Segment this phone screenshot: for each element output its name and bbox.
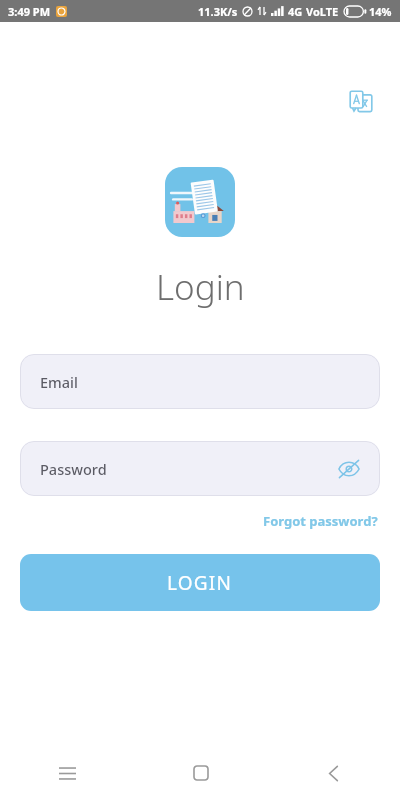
button[interactable]: Home bbox=[134, 746, 267, 800]
button[interactable]: Change language bbox=[344, 85, 378, 119]
staticText: VoLTE bbox=[306, 4, 339, 19]
button[interactable]: Password bbox=[20, 441, 380, 496]
staticText: 3:49 PM bbox=[8, 4, 51, 19]
button[interactable]: Email bbox=[20, 354, 380, 409]
staticText: 4G bbox=[288, 4, 303, 19]
staticText: Login bbox=[156, 263, 245, 311]
staticText: Email bbox=[40, 372, 78, 392]
staticText: 11.3K/s bbox=[198, 4, 238, 19]
button[interactable]: Forgot password? bbox=[261, 510, 380, 532]
staticText: LOGIN bbox=[167, 570, 233, 596]
staticText: 14% bbox=[369, 4, 392, 19]
staticText: Forgot password? bbox=[263, 512, 378, 530]
staticText: Password bbox=[40, 459, 107, 479]
button[interactable]: Show password bbox=[336, 456, 362, 482]
button[interactable]: Back bbox=[267, 746, 400, 800]
button[interactable]: Recent apps bbox=[0, 746, 134, 800]
button[interactable]: LOGIN bbox=[20, 554, 380, 611]
